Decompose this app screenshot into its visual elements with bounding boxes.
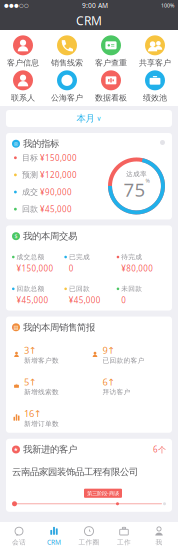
staticText: ★ <box>13 446 18 453</box>
staticText: 我新进的客户 <box>23 444 77 455</box>
button[interactable]: 绩效池 <box>133 70 177 103</box>
staticText: 客户查重 <box>95 58 127 68</box>
staticText: 客户信息 <box>7 58 39 68</box>
button[interactable]: 销售线索 <box>45 35 89 68</box>
staticText: ¥45,000 <box>69 295 101 305</box>
staticText: 已回款的客户 <box>102 356 144 365</box>
staticText: 回款 <box>22 204 38 214</box>
staticText: ¥150,000 <box>40 152 77 163</box>
staticText: 新增订单数 <box>24 420 59 428</box>
button[interactable]: 数据看板 <box>89 70 133 103</box>
button[interactable]: 公海客户 <box>45 70 89 103</box>
staticText: 16↑ <box>24 407 42 420</box>
button[interactable]: 共享客户 <box>133 35 177 68</box>
staticText: 拜访客户 <box>102 388 130 396</box>
staticText: 9↑ <box>102 344 115 356</box>
staticText: 0 <box>69 263 74 274</box>
staticText: 我的本周交易 <box>23 230 77 242</box>
staticText: 已完成 <box>69 253 90 261</box>
staticText: 工作圈 <box>78 538 99 546</box>
button[interactable]: 客户信息 <box>1 35 45 68</box>
staticText: 第三阶段-商谈 <box>87 490 119 497</box>
staticText: ¥150,000 <box>16 263 53 274</box>
staticText: ●●●○○ <box>4 2 29 9</box>
staticText: 成交 <box>22 187 38 197</box>
staticText: ∨ <box>96 115 101 122</box>
staticText: 新增线索数 <box>24 388 59 396</box>
staticText: 目标 <box>22 153 38 163</box>
staticText: ¥90,000 <box>40 187 72 197</box>
staticText: 待完成 <box>121 253 142 261</box>
staticText: 回款总额 <box>17 285 45 293</box>
staticText: 绩效池 <box>143 93 167 103</box>
staticText: 100% <box>161 2 174 9</box>
staticText: 0 <box>121 295 126 305</box>
staticText: 云南品家园装饰品工程有限公司 <box>12 466 138 478</box>
staticText: 已回款 <box>69 285 90 293</box>
staticText: 9:00 AM <box>82 1 108 10</box>
staticText: ¥45,000 <box>16 295 48 305</box>
button[interactable]: 我 <box>141 523 176 549</box>
button[interactable]: CRM <box>36 523 71 549</box>
button[interactable]: 工作 <box>106 523 141 549</box>
staticText: ¥45,000 <box>40 204 72 214</box>
staticText: 75 <box>123 177 145 202</box>
staticText: 工作 <box>117 538 131 546</box>
staticText: 6↑ <box>102 376 115 388</box>
button[interactable]: 工作圈 <box>71 523 106 549</box>
staticText: 3↑ <box>24 344 37 356</box>
staticText: 销售线索 <box>51 58 83 68</box>
staticText: 我的指标 <box>23 138 59 149</box>
button[interactable]: 本月 <box>6 110 172 127</box>
button[interactable]: 联系人 <box>1 70 45 103</box>
button[interactable]: 会话 <box>1 523 36 549</box>
staticText: 共享客户 <box>139 58 171 68</box>
staticText: ¥120,000 <box>40 170 77 180</box>
staticText: 本月 <box>76 113 94 124</box>
staticText: 成交总额 <box>17 253 45 261</box>
staticText: 公海客户 <box>51 93 83 103</box>
staticText: ◎ <box>13 141 18 147</box>
staticText: CRM <box>47 538 61 547</box>
staticText: 数据看板 <box>95 93 127 103</box>
staticText: 我的本周销售简报 <box>23 322 95 333</box>
staticText: ▤ <box>13 324 18 330</box>
staticText: 我 <box>155 538 162 546</box>
button[interactable]: 客户查重 <box>89 35 133 68</box>
staticText: $ <box>14 233 17 240</box>
staticText: 新增客户数 <box>24 356 59 365</box>
staticText: 6个 <box>153 444 166 455</box>
staticText: 5↑ <box>24 376 37 388</box>
staticText: CRM <box>76 12 102 28</box>
staticText: 会话 <box>12 538 26 546</box>
staticText: 预测 <box>22 170 38 180</box>
staticText: ¥80,000 <box>121 263 153 274</box>
staticText: 未回款 <box>121 285 142 293</box>
staticText: 联系人 <box>11 93 35 103</box>
staticText: % <box>145 177 149 184</box>
staticText: 达成率 <box>126 170 147 178</box>
